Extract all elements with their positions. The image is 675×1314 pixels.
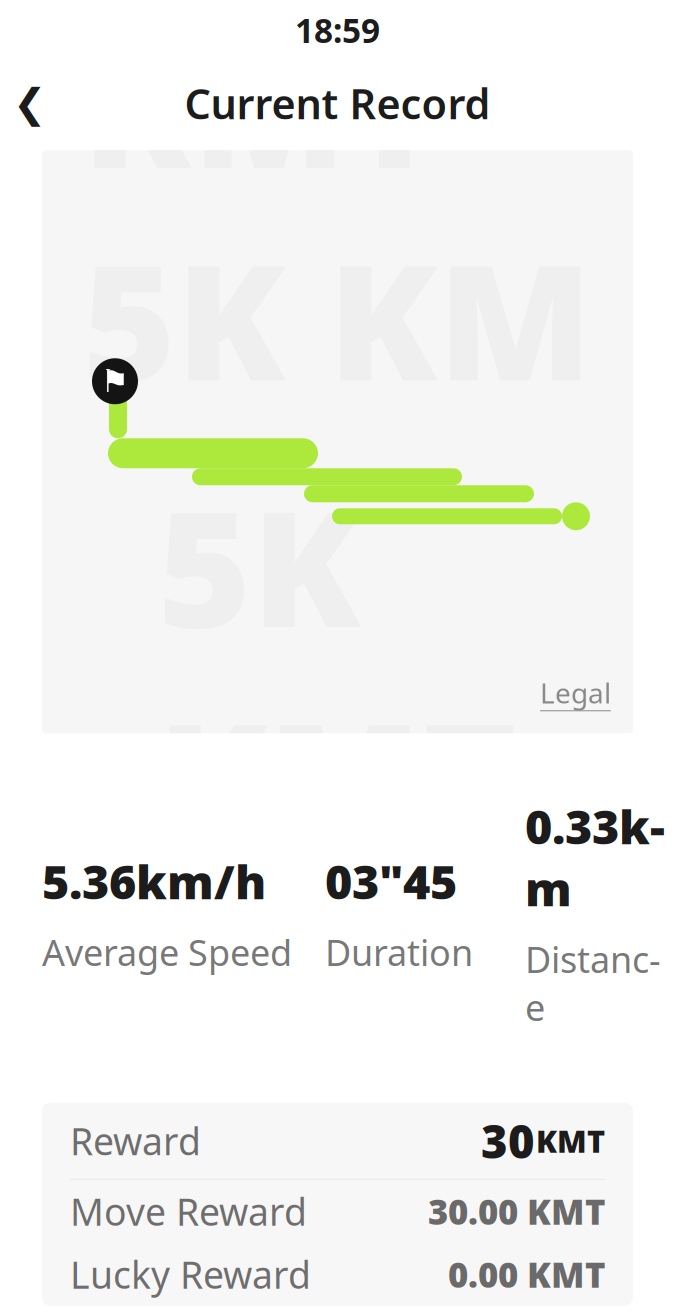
staticText: 5.36km/h <box>42 850 266 912</box>
staticText: Duration <box>325 928 473 976</box>
staticText: 30 <box>481 1111 535 1171</box>
staticText: 0.33km <box>525 795 665 919</box>
staticText: Lucky Reward <box>70 1249 311 1299</box>
staticText: KMT 5K KM <box>82 0 593 425</box>
staticText: ⚑ <box>100 363 129 399</box>
staticText: Average Speed <box>42 928 292 976</box>
staticText: Reward <box>70 1116 201 1166</box>
staticText: 0.00 KMT <box>448 1251 605 1297</box>
staticText: 03"45 <box>325 850 457 912</box>
staticText: 5K KMT KM <box>157 459 517 1096</box>
staticText: Move Reward <box>70 1186 307 1236</box>
staticText: KMT <box>536 1120 605 1161</box>
staticText: 18:59 <box>295 8 380 52</box>
button[interactable]: Back <box>0 73 60 133</box>
staticText: Current Record <box>184 76 490 131</box>
staticText: ❮ <box>13 81 47 126</box>
staticText: Distance <box>525 935 661 1031</box>
staticText: 30.00 KMT <box>428 1188 605 1234</box>
staticText: KMT 5K KM <box>82 1130 593 1314</box>
staticText: Legal <box>540 674 611 711</box>
